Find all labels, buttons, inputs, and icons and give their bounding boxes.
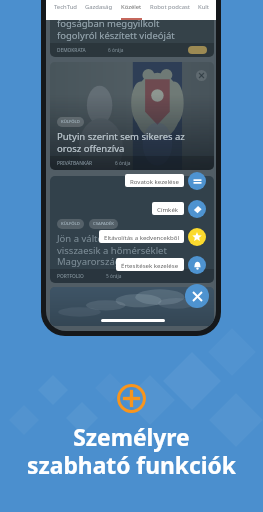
button[interactable]: Eltávolítás a kedvencekből [46,230,184,243]
button[interactable]: Közélet [121,0,142,20]
button[interactable]: Bezárás [196,70,207,81]
button[interactable]: Bezárás [185,284,209,308]
button[interactable]: TechTud [54,0,77,20]
staticText: KÜLFÖLD [61,221,80,227]
staticText: Személyre szabható funkciók [0,422,263,481]
button[interactable]: Értesítések kezelése [188,256,206,274]
button[interactable]: Rovatok kezelése [46,174,184,187]
button[interactable]: Eltávolítás a kedvencekből [188,228,206,246]
button[interactable]: KÜLFÖLD [50,176,214,283]
staticText: PRIVÁTBANKÁR [57,160,93,167]
staticText: 6 órája [108,47,124,54]
button[interactable]: Kult [198,0,209,20]
staticText: 5 órája [106,273,122,280]
staticText: Kult [198,3,209,11]
staticText: KÜLFÖLD [61,119,80,125]
button[interactable]: Rovatok kezelése [188,172,206,190]
button[interactable]: Címkék [46,202,184,215]
button[interactable]: Értesítések kezelése [46,258,184,271]
staticText: Robot podcast [150,3,190,11]
button[interactable] [50,287,214,326]
button[interactable]: KÜLFÖLD [50,62,214,170]
staticText: Jön a változás: visszaesik a hőmérséklet… [57,232,167,267]
staticText: Rovatok kezelése [130,177,179,184]
staticText: Putyin szerint sem sikeres az orosz offe… [57,130,185,154]
button[interactable]: fogságban meggyilkolt fogolyról készítet… [50,0,214,57]
staticText: DEMOKRATA [57,47,86,54]
staticText: Közélet [121,3,142,11]
staticText: Gazdaság [85,3,113,11]
staticText: Címkék [157,205,179,212]
staticText: TechTud [54,3,77,11]
staticText: 6 órája [115,160,131,167]
staticText: Eltávolítás a kedvencekből [104,233,179,240]
button[interactable]: Címkék [188,200,206,218]
staticText: PORTFOLIO [57,273,84,280]
staticText: Értesítések kezelése [121,261,179,268]
button[interactable]: Robot podcast [150,0,190,20]
staticText: fogságban meggyilkolt fogolyról készítet… [57,17,175,41]
button[interactable]: Gazdaság [85,0,113,20]
staticText: CSAPADÉK [93,221,114,227]
